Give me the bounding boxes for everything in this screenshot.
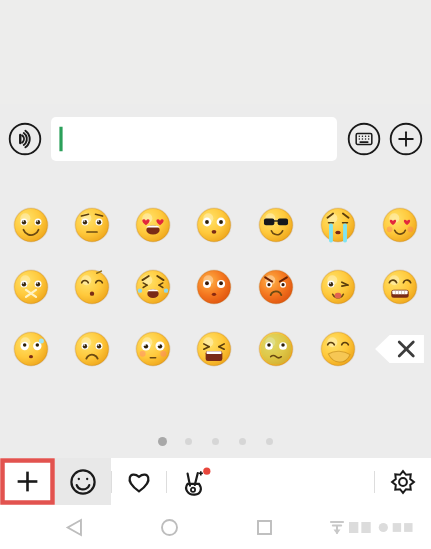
button[interactable]: Add [389, 122, 423, 156]
button[interactable] [51, 117, 337, 161]
button[interactable]: Emoji 6 [307, 194, 369, 256]
button[interactable]: Favorites [112, 458, 166, 505]
button[interactable]: Emoji 12 [245, 256, 307, 318]
button[interactable]: Add sticker pack [0, 458, 55, 505]
button[interactable]: Emoji 19 [245, 318, 307, 380]
button[interactable]: Backspace [369, 318, 431, 380]
button[interactable]: Emoji 7 [369, 194, 431, 256]
button[interactable]: Back [52, 505, 96, 549]
button[interactable]: Emoji 8 [0, 256, 61, 318]
button[interactable]: Emoji 11 [183, 256, 245, 318]
button[interactable]: Emoji 4 [183, 194, 245, 256]
button[interactable]: Emoji 3 [122, 194, 183, 256]
button[interactable]: Recent apps [242, 505, 286, 549]
button[interactable]: Switch keyboard [347, 122, 381, 156]
button[interactable]: Emoji 15 [0, 318, 61, 380]
button[interactable]: Emoji 18 [183, 318, 245, 380]
button[interactable]: Emoji 2 [61, 194, 122, 256]
button[interactable]: Emoji 9 [61, 256, 122, 318]
button[interactable]: Emoji 13 [307, 256, 369, 318]
button[interactable]: Emoji 1 [0, 194, 61, 256]
button[interactable]: Emoji 5 [245, 194, 307, 256]
button[interactable]: Emoji 14 [369, 256, 431, 318]
button[interactable]: Emoji [55, 458, 111, 505]
button[interactable]: Home [147, 505, 191, 549]
button[interactable]: Emoji 17 [122, 318, 183, 380]
button[interactable]: Settings [375, 458, 431, 505]
button[interactable]: Gestures [167, 458, 225, 505]
button[interactable]: Emoji 16 [61, 318, 122, 380]
button[interactable]: Voice input [8, 122, 42, 156]
button[interactable]: Emoji 10 [122, 256, 183, 318]
button[interactable]: Emoji 20 [307, 318, 369, 380]
